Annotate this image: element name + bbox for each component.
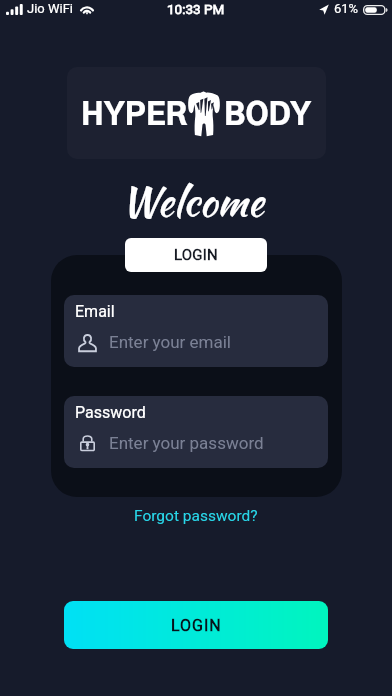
staticText: LOGIN bbox=[171, 616, 222, 635]
button[interactable]: Email bbox=[64, 295, 328, 367]
staticText: Email bbox=[75, 302, 115, 321]
button[interactable]: Password bbox=[64, 396, 328, 468]
staticText: Forgot password? bbox=[134, 507, 258, 525]
staticText: 61% bbox=[334, 1, 359, 16]
staticText: Password bbox=[75, 403, 146, 422]
staticText: Jio WiFi bbox=[27, 1, 74, 16]
staticText: BODY bbox=[224, 101, 312, 131]
button[interactable]: LOGIN bbox=[64, 601, 328, 649]
staticText: HYPER bbox=[81, 101, 188, 131]
staticText: Welcome bbox=[121, 173, 264, 231]
button[interactable]: LOGIN bbox=[125, 238, 267, 272]
staticText: 10:33 PM bbox=[167, 1, 225, 17]
button[interactable]: Forgot password? bbox=[128, 503, 264, 529]
staticText: LOGIN bbox=[174, 246, 218, 264]
staticText: Enter your password bbox=[109, 433, 264, 453]
staticText: Enter your email bbox=[109, 332, 232, 352]
